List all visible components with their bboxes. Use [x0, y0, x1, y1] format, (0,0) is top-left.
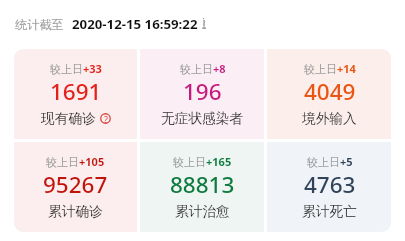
staticText: 较上日+5 — [307, 154, 353, 169]
button[interactable]: 较上日+14 — [267, 49, 391, 139]
staticText: 1691 — [50, 76, 102, 107]
staticText: 累计治愈 — [175, 203, 230, 220]
button[interactable]: 帮助说明 — [100, 113, 111, 124]
staticText: 88813 — [170, 169, 235, 200]
staticText: 无症状感染者 — [161, 110, 244, 127]
staticText: 4049 — [304, 76, 356, 107]
staticText: 现有确诊 — [41, 110, 96, 127]
staticText: 4763 — [304, 169, 356, 200]
button[interactable]: 较上日+5 — [267, 142, 391, 232]
staticText: 累计死亡 — [302, 203, 357, 220]
staticText: ? — [104, 113, 108, 124]
button[interactable]: 较上日+8 — [140, 49, 264, 139]
button[interactable]: 较上日+105 — [14, 142, 137, 232]
staticText: 累计确诊 — [48, 203, 103, 220]
staticText: 196 — [183, 76, 222, 107]
staticText: 境外输入 — [302, 110, 357, 127]
staticText: 较上日+33 — [50, 61, 102, 76]
button[interactable]: 较上日+165 — [140, 142, 264, 232]
staticText: 较上日+8 — [180, 61, 226, 76]
staticText: 较上日+14 — [304, 61, 356, 76]
staticText: 95267 — [43, 169, 108, 200]
staticText: 较上日+165 — [173, 154, 232, 169]
staticText: 2020-12-15 16:59:22 — [72, 15, 198, 33]
staticText: 统计截至 — [15, 17, 64, 32]
button[interactable]: 较上日+33 — [14, 49, 137, 139]
staticText: 较上日+105 — [46, 154, 105, 169]
